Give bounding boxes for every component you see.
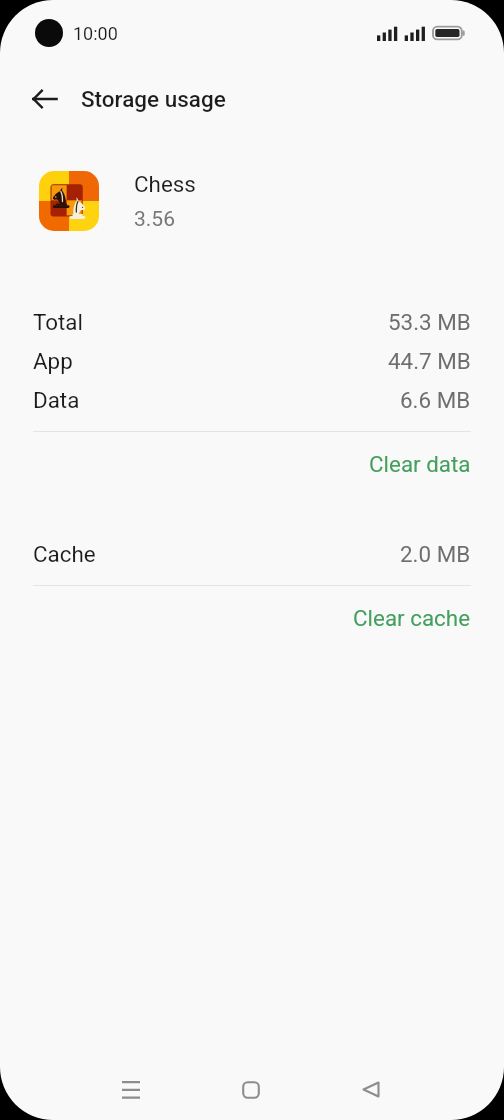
button[interactable]: Home <box>220 1059 281 1120</box>
staticText: 6.6 MB <box>400 387 471 413</box>
staticText: Cache <box>33 541 96 567</box>
staticText: Chess <box>134 171 196 197</box>
staticText: 3.56 <box>134 207 175 232</box>
button[interactable]: Back <box>340 1059 401 1120</box>
button[interactable]: Clear cache <box>0 588 504 644</box>
button[interactable]: Back <box>21 76 67 122</box>
staticText: App <box>33 348 73 374</box>
button[interactable]: Recent apps <box>100 1059 161 1120</box>
staticText: Data <box>33 387 80 413</box>
staticText: Total <box>33 309 83 335</box>
staticText: 53.3 MB <box>388 309 471 335</box>
staticText: 2.0 MB <box>400 541 471 567</box>
staticText: Clear data <box>369 451 471 477</box>
button[interactable]: Clear data <box>0 434 504 490</box>
staticText: Storage usage <box>81 86 226 112</box>
staticText: 10:00 <box>73 23 118 44</box>
staticText: 44.7 MB <box>388 348 471 374</box>
staticText: Clear cache <box>353 605 471 631</box>
